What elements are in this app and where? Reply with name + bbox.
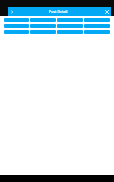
button[interactable] [84, 30, 110, 34]
button[interactable]: Close [103, 8, 111, 16]
button[interactable]: Back [8, 8, 15, 15]
button[interactable] [4, 18, 29, 22]
staticText: Post Detail [49, 9, 68, 14]
button[interactable] [30, 18, 56, 22]
button[interactable] [4, 24, 29, 28]
button[interactable] [84, 24, 110, 28]
button[interactable] [57, 30, 83, 34]
button[interactable] [30, 30, 56, 34]
button[interactable] [84, 18, 110, 22]
button[interactable] [57, 24, 83, 28]
button[interactable] [57, 18, 83, 22]
button[interactable] [30, 24, 56, 28]
button[interactable] [4, 30, 29, 34]
